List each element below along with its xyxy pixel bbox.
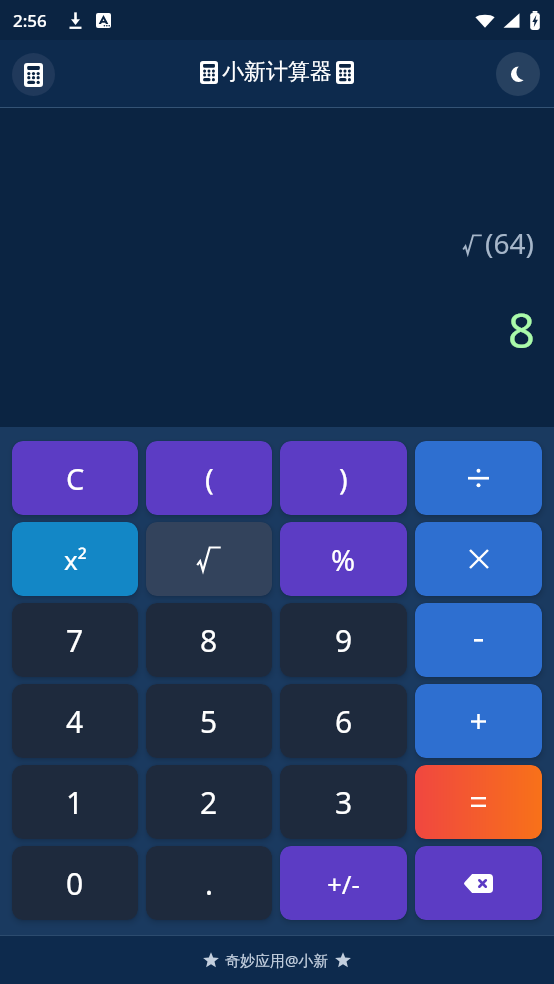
button[interactable]: Toggle dark mode [496,52,540,96]
button[interactable]: Multiply [415,522,542,596]
button[interactable]: 7 [12,603,138,677]
button[interactable]: 8 [146,603,272,677]
staticText: 1 [66,782,84,823]
button[interactable]: 4 [12,684,138,758]
button[interactable]: 1 [12,765,138,839]
button[interactable]: Equals [415,765,542,839]
staticText: (64) [485,224,534,262]
staticText: . [205,863,214,904]
button[interactable]: . [146,846,272,920]
staticText: C [66,459,85,498]
button[interactable]: 6 [280,684,407,758]
staticText: 4 [66,701,84,742]
button[interactable]: Divide [415,441,542,515]
other: Equals [471,797,486,807]
staticText: 2 [200,782,218,823]
button[interactable]: +/- [280,846,407,920]
staticText: 8 [200,620,218,661]
staticText: 5 [200,701,218,742]
button[interactable]: Calculator menu [12,53,55,96]
staticText: 8 [508,298,535,362]
other: Backspace [464,874,493,893]
button[interactable]: % [280,522,407,596]
button[interactable]: 9 [280,603,407,677]
button[interactable]: Square root [146,522,272,596]
button[interactable]: 2 [146,765,272,839]
other: Minus [474,638,483,642]
button[interactable]: 0 [12,846,138,920]
button[interactable]: C [12,441,138,515]
staticText: 0 [66,863,84,904]
button[interactable]: ) [280,441,407,515]
staticText: ) [339,459,348,498]
button[interactable]: 3 [280,765,407,839]
other: Square root [197,547,221,571]
staticText: x² [64,542,87,577]
button[interactable]: Backspace [415,846,542,920]
button[interactable]: ( [146,441,272,515]
staticText: % [331,540,356,579]
staticText: 7 [66,620,84,661]
staticText: 小新计算器 [222,58,332,86]
staticText: ( [205,459,214,498]
other: Multiply [470,550,488,568]
other: Plus [471,714,486,729]
button[interactable]: x² [12,522,138,596]
other: Divide [468,470,489,486]
staticText: 9 [335,620,353,661]
staticText: 6 [335,701,353,742]
staticText: 3 [335,782,353,823]
button[interactable]: Minus [415,603,542,677]
staticText: 2:56 [13,9,47,32]
button[interactable]: Plus [415,684,542,758]
staticText: +/- [327,866,360,901]
staticText: 奇妙应用@小新 [225,950,329,970]
button[interactable]: 5 [146,684,272,758]
